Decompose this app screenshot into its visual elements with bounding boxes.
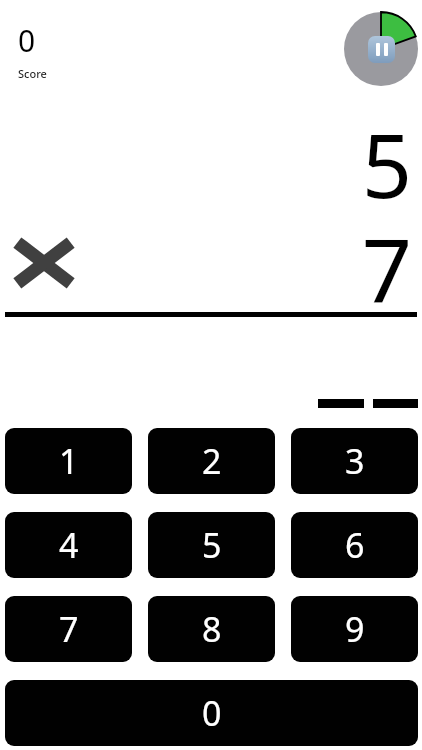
- button[interactable]: 8: [148, 596, 275, 662]
- staticText: 5: [361, 104, 412, 224]
- staticText: 1: [59, 438, 79, 484]
- button[interactable]: 2: [148, 428, 275, 494]
- staticText: 5: [202, 522, 222, 568]
- button[interactable]: 0: [5, 680, 418, 746]
- staticText: 4: [59, 522, 79, 568]
- button[interactable]: 6: [291, 512, 418, 578]
- button[interactable]: 7: [5, 596, 132, 662]
- button[interactable]: Pause: [344, 12, 418, 86]
- staticText: 9: [345, 606, 365, 652]
- button[interactable]: 4: [5, 512, 132, 578]
- staticText: 0: [18, 20, 36, 61]
- button[interactable]: 0: [12, 18, 53, 83]
- staticText: Score: [18, 66, 47, 81]
- button[interactable]: 9: [291, 596, 418, 662]
- staticText: 7: [59, 606, 79, 652]
- staticText: 0: [202, 690, 222, 736]
- button[interactable]: 5: [148, 512, 275, 578]
- button[interactable]: 3: [291, 428, 418, 494]
- button[interactable]: 1: [5, 428, 132, 494]
- staticText: 6: [345, 522, 365, 568]
- staticText: 3: [345, 438, 365, 484]
- staticText: 8: [202, 606, 222, 652]
- staticText: 2: [202, 438, 222, 484]
- staticText: 7: [361, 209, 412, 329]
